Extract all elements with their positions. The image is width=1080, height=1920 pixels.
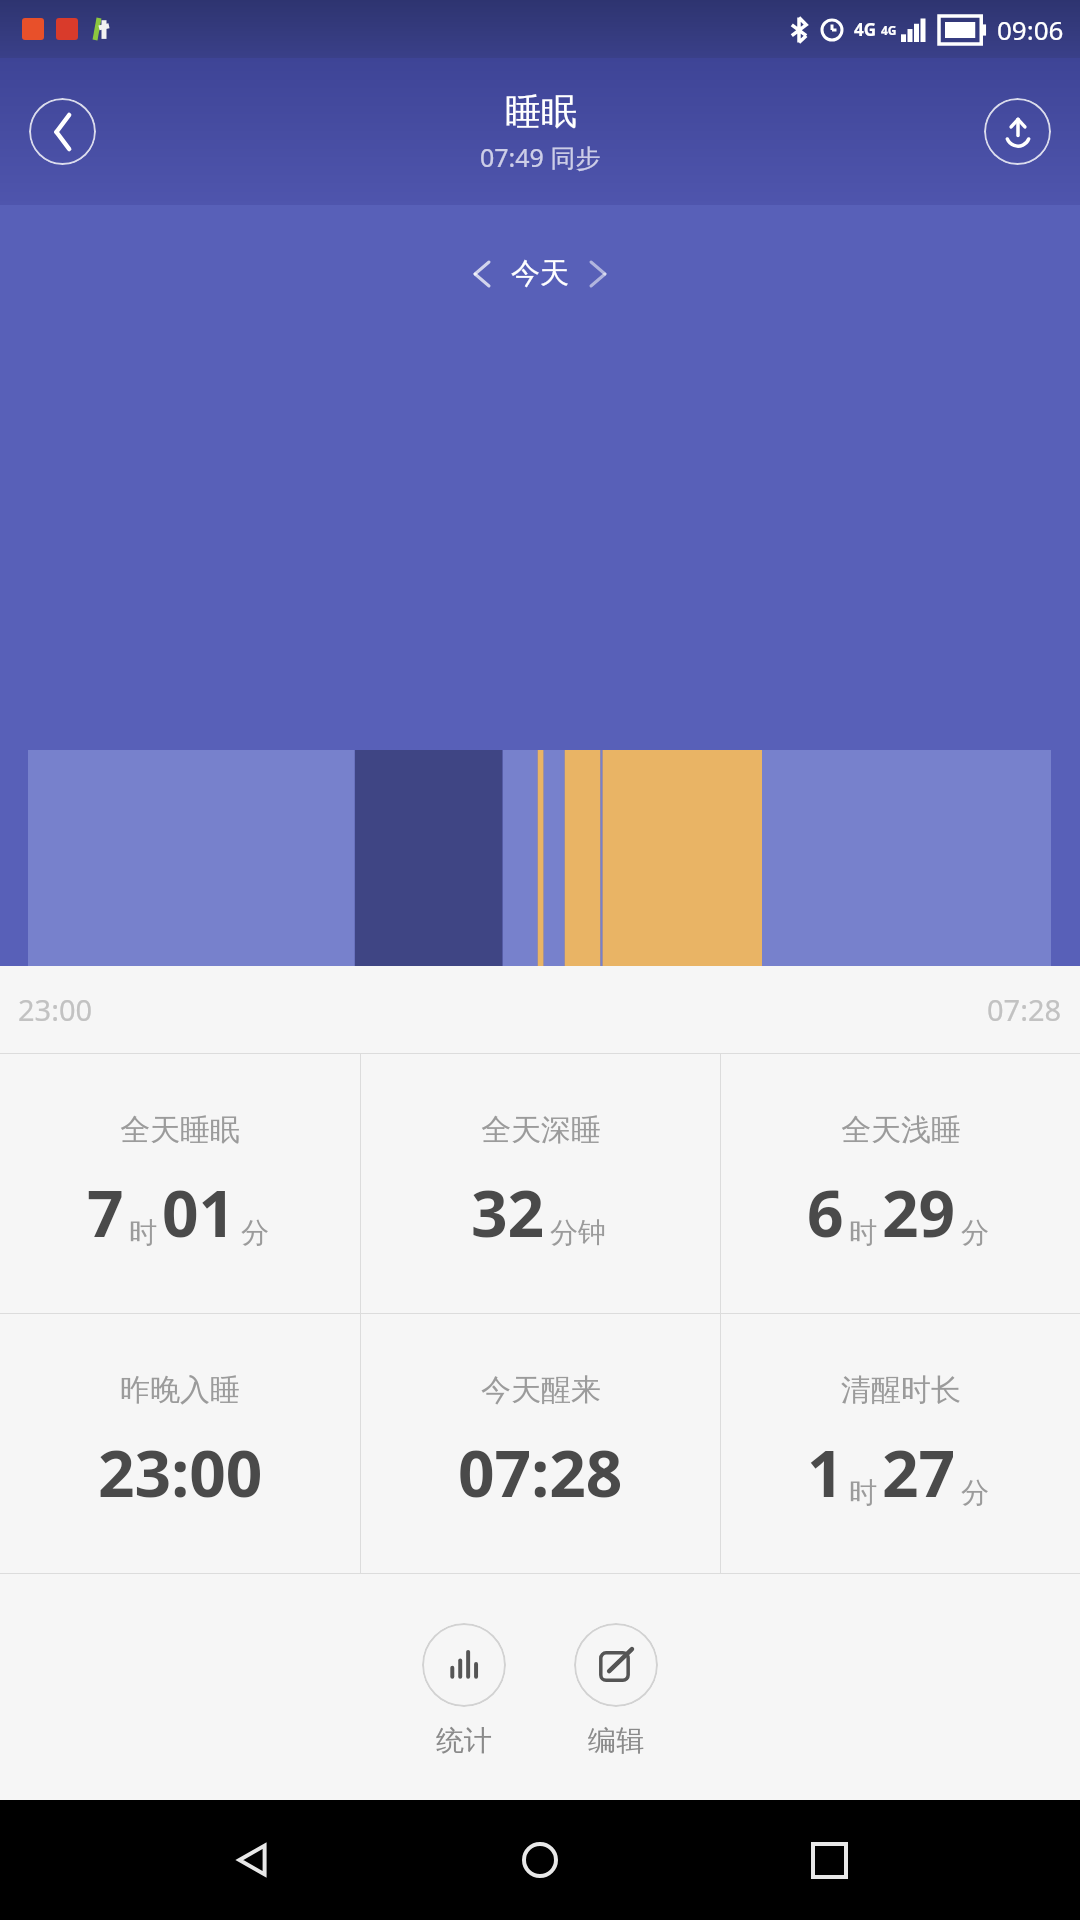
button[interactable]: Home xyxy=(503,1823,577,1897)
button[interactable]: Sync xyxy=(984,98,1051,165)
staticText: 清醒时长 xyxy=(841,1371,961,1409)
staticText: 27 xyxy=(882,1429,956,1516)
button[interactable]: 统计 xyxy=(414,1623,514,1758)
staticText: 4G xyxy=(881,22,897,38)
staticText: 07:49 同步 xyxy=(480,140,601,174)
button[interactable]: 全天浅睡 xyxy=(721,1054,1080,1313)
staticText: 昨晚入睡 xyxy=(120,1371,240,1409)
staticText: 分 xyxy=(241,1215,269,1250)
button[interactable]: 今天醒来 xyxy=(361,1314,720,1573)
button[interactable]: 全天睡眠 xyxy=(0,1054,360,1313)
button[interactable]: Back xyxy=(215,1823,289,1897)
staticText: 今天 xyxy=(511,255,569,292)
button[interactable]: 清醒时长 xyxy=(721,1314,1080,1573)
staticText: 分钟 xyxy=(550,1215,606,1250)
staticText: 07:28 xyxy=(987,990,1062,1029)
staticText: 统计 xyxy=(436,1723,492,1758)
button[interactable]: Back xyxy=(29,98,96,165)
button[interactable]: Recents xyxy=(792,1823,866,1897)
staticText: 01 xyxy=(162,1169,236,1256)
staticText: 09:06 xyxy=(997,12,1064,47)
staticText: 分 xyxy=(961,1215,989,1250)
staticText: 分 xyxy=(961,1475,989,1510)
staticText: 23:00 xyxy=(98,1429,263,1516)
button[interactable]: 今天 xyxy=(475,255,605,292)
staticText: 6 xyxy=(807,1169,844,1256)
button[interactable]: 编辑 xyxy=(566,1623,666,1758)
staticText: 1 xyxy=(807,1429,844,1516)
button[interactable]: 昨晚入睡 xyxy=(0,1314,360,1573)
staticText: 23:00 xyxy=(18,990,93,1029)
staticText: 编辑 xyxy=(588,1723,644,1758)
staticText: 29 xyxy=(882,1169,956,1256)
staticText: 全天睡眠 xyxy=(120,1111,240,1149)
button[interactable]: 全天深睡 xyxy=(361,1054,720,1313)
staticText: 4G xyxy=(854,18,877,41)
staticText: 7 xyxy=(87,1169,124,1256)
staticText: 全天浅睡 xyxy=(841,1111,961,1149)
staticText: 今天醒来 xyxy=(481,1371,601,1409)
staticText: 时 xyxy=(849,1215,877,1250)
staticText: 07:28 xyxy=(458,1429,623,1516)
staticText: 时 xyxy=(849,1475,877,1510)
staticText: 时 xyxy=(129,1215,157,1250)
staticText: 32 xyxy=(471,1169,545,1256)
staticText: 睡眠 xyxy=(505,89,577,134)
staticText: 全天深睡 xyxy=(481,1111,601,1149)
